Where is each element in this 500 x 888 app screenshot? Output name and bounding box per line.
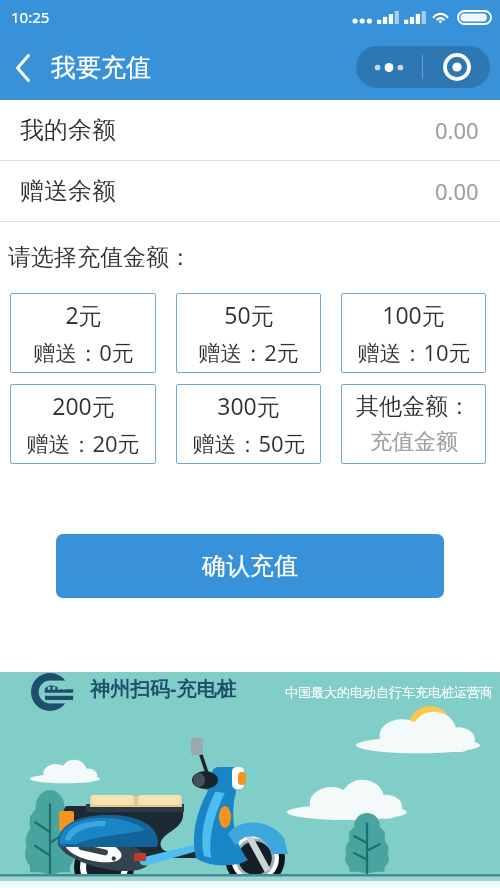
- staticText: 50元: [224, 299, 274, 330]
- staticText: 其他金额：: [356, 392, 471, 421]
- staticText: 赠送：0元: [33, 337, 134, 367]
- button[interactable]: 2元: [10, 293, 156, 373]
- staticText: 赠送：20元: [26, 428, 140, 458]
- staticText: 我要充值: [51, 52, 151, 83]
- staticText: 确认充值: [202, 551, 298, 581]
- staticText: 2元: [65, 299, 102, 330]
- staticText: 中国最大的电动自行车充电桩运营商: [285, 684, 493, 700]
- staticText: 0.00: [435, 176, 479, 206]
- staticText: 200元: [52, 390, 115, 421]
- staticText: 0.00: [435, 115, 479, 145]
- button[interactable]: 200元: [10, 384, 156, 464]
- button[interactable]: More options: [356, 61, 422, 74]
- staticText: 赠送：10元: [357, 337, 471, 367]
- button[interactable]: 50元: [176, 293, 321, 373]
- button[interactable]: 确认充值: [56, 534, 444, 598]
- staticText: 赠送：50元: [192, 428, 306, 458]
- other: Back: [16, 54, 30, 82]
- staticText: 我的余额: [20, 115, 116, 145]
- staticText: 赠送：2元: [198, 337, 299, 367]
- staticText: 100元: [382, 299, 445, 330]
- button[interactable]: 其他金额：: [341, 384, 486, 464]
- button[interactable]: 300元: [176, 384, 321, 464]
- staticText: 300元: [217, 390, 280, 421]
- staticText: 充值金额: [370, 428, 458, 456]
- staticText: 赠送余额: [20, 176, 116, 206]
- button[interactable]: 我的余额: [0, 100, 500, 160]
- button[interactable]: 赠送余额: [0, 161, 500, 221]
- button[interactable]: Back: [0, 42, 161, 93]
- button[interactable]: 100元: [341, 293, 486, 373]
- staticText: 10:25: [11, 7, 50, 27]
- button[interactable]: Close: [423, 53, 490, 81]
- staticText: 神州扫码-充电桩: [90, 675, 237, 702]
- staticText: 请选择充值金额：: [8, 243, 192, 272]
